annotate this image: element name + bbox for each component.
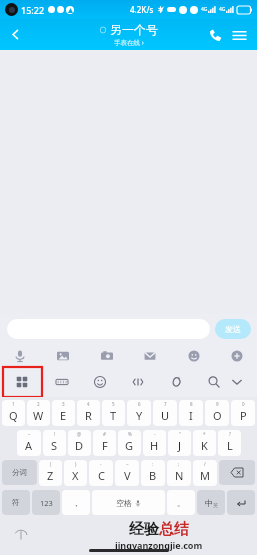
button[interactable]: Menu (227, 23, 251, 47)
staticText: ( (50, 461, 52, 467)
button[interactable]: ~ (115, 460, 139, 486)
button[interactable]: 0 (231, 400, 255, 426)
button[interactable]: ( (39, 460, 62, 486)
button[interactable]: " (168, 430, 191, 456)
staticText: L (227, 438, 233, 453)
button[interactable]: Gift (140, 346, 160, 366)
button[interactable]: % (118, 430, 141, 456)
staticText: Y (136, 408, 143, 423)
button[interactable]: ; (167, 460, 191, 486)
staticText: W (33, 408, 44, 423)
button[interactable]: Voice (10, 346, 30, 366)
staticText: jingyanzongjie.com (115, 539, 203, 551)
button[interactable]: Edit (128, 372, 148, 392)
button[interactable]: 中 (197, 490, 225, 515)
staticText: @ (77, 431, 82, 437)
button[interactable]: 4 (77, 400, 100, 426)
staticText: F (102, 438, 108, 453)
staticText: 4.2K/s (130, 4, 154, 15)
staticText: U (161, 408, 170, 423)
button[interactable]: Collapse (227, 372, 247, 392)
staticText: 9 (216, 401, 219, 407)
button[interactable]: 8 (179, 400, 203, 426)
button[interactable]: 9 (205, 400, 229, 426)
button[interactable]: ， (62, 490, 90, 515)
staticText: 6 (138, 401, 141, 407)
staticText: N (175, 468, 184, 483)
staticText: 发送 (225, 324, 241, 334)
button[interactable]: 符 (2, 490, 30, 515)
staticText: H (150, 438, 159, 453)
button[interactable]: 123 (32, 490, 60, 515)
button[interactable]: : (141, 460, 165, 486)
staticText: 。 (177, 498, 185, 508)
staticText: 分词 (12, 468, 27, 477)
button[interactable]: Emoji (90, 372, 110, 392)
staticText: 5 (112, 401, 115, 407)
button[interactable]: Logo (14, 528, 28, 542)
staticText: 15:22 (21, 4, 45, 16)
button[interactable]: Camera (97, 346, 117, 366)
button[interactable]: 5 (102, 400, 125, 426)
button[interactable]: - (143, 430, 166, 456)
button[interactable]: Back (0, 19, 30, 50)
staticText: 空格 (116, 498, 132, 508)
staticText: " (179, 431, 181, 437)
button[interactable]: ~ (17, 430, 41, 456)
staticText: A (25, 438, 33, 453)
staticText: 2 (37, 401, 40, 407)
button[interactable]: ? (218, 430, 241, 456)
button[interactable]: 。 (167, 490, 195, 515)
button[interactable]: 分词 (2, 460, 37, 485)
button[interactable]: Backspace (219, 460, 255, 485)
staticText: ! (54, 431, 56, 437)
staticText: 总结 (159, 520, 189, 539)
staticText: / (204, 461, 206, 467)
button[interactable]: Keyboard (52, 372, 72, 392)
button[interactable]: ) (64, 460, 87, 486)
staticText: - (154, 431, 156, 437)
button[interactable]: 7 (153, 400, 177, 426)
staticText: ~ (126, 461, 129, 467)
button[interactable]: @ (68, 430, 91, 456)
button[interactable]: Photo (53, 346, 73, 366)
staticText: P (240, 408, 247, 423)
staticText: 123 (40, 498, 53, 508)
staticText: 符 (12, 498, 20, 507)
button[interactable]: 空格 (92, 490, 165, 515)
staticText: I (189, 408, 193, 423)
staticText: 1 (12, 401, 15, 407)
button[interactable]: ! (43, 430, 66, 456)
button[interactable]: 1 (2, 400, 25, 426)
button[interactable]: Attach (166, 372, 186, 392)
button[interactable]: 3 (52, 400, 75, 426)
staticText: S (51, 438, 58, 453)
button[interactable]: Emoji (184, 346, 204, 366)
staticText: Z (47, 468, 54, 483)
staticText: 8 (190, 401, 193, 407)
button[interactable]: 发送 (215, 319, 251, 339)
staticText: Q (9, 408, 18, 423)
staticText: 4G (201, 6, 208, 13)
staticText: E (60, 408, 67, 423)
button[interactable]: Enter (227, 490, 255, 515)
button[interactable]: More (227, 346, 247, 366)
staticText: 另一个号 (110, 22, 158, 37)
staticText: R (85, 408, 92, 423)
staticText: : (152, 461, 154, 467)
staticText: 4G (219, 6, 226, 13)
staticText: ) (75, 461, 77, 467)
button[interactable]: Search (204, 372, 224, 392)
staticText: M (200, 468, 210, 483)
button[interactable]: Apps (12, 372, 32, 392)
button[interactable]: 6 (127, 400, 151, 426)
button[interactable]: - (89, 460, 113, 486)
button[interactable]: Call (203, 23, 227, 47)
button[interactable]: # (93, 430, 116, 456)
staticText: B (149, 468, 157, 483)
button[interactable]: 2 (27, 400, 50, 426)
staticText: D (75, 438, 84, 453)
button[interactable]: * (193, 430, 216, 456)
button[interactable]: / (193, 460, 217, 486)
